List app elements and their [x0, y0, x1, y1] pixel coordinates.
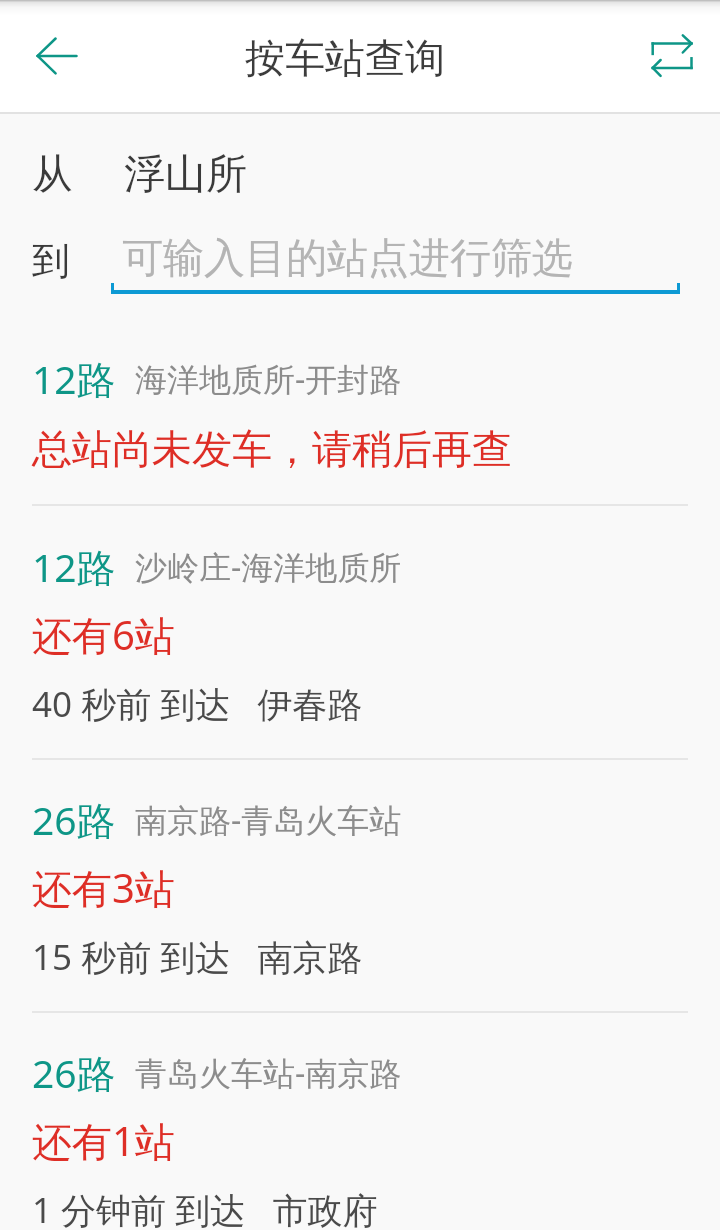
staticText: 26路: [32, 793, 116, 846]
staticText: 可输入目的站点进行筛选: [122, 233, 573, 285]
staticText: 还有1站: [32, 1113, 175, 1168]
staticText: 南京路-青岛火车站: [135, 798, 402, 842]
staticText: 还有6站: [32, 607, 175, 662]
staticText: 15 秒前 到达 南京路: [32, 933, 363, 981]
button[interactable]: 12路: [0, 320, 720, 504]
button[interactable]: 可输入目的站点进行筛选: [111, 224, 680, 294]
button[interactable]: 26路: [0, 760, 720, 1011]
staticText: 海洋地质所-开封路: [135, 357, 402, 401]
button[interactable]: 从: [0, 116, 720, 216]
staticText: 1 分钟前 到达 市政府: [32, 1186, 378, 1230]
staticText: 12路: [32, 352, 116, 405]
staticText: 到: [32, 237, 70, 285]
staticText: 从: [32, 149, 73, 201]
button[interactable]: 26路: [0, 1013, 720, 1230]
staticText: 总站尚未发车，请稍后再查: [32, 424, 512, 474]
button[interactable]: 12路: [0, 506, 720, 758]
staticText: 40 秒前 到达 伊春路: [32, 680, 363, 728]
staticText: 12路: [32, 540, 116, 593]
button[interactable]: Back: [14, 26, 86, 98]
staticText: 还有3站: [32, 860, 175, 915]
staticText: 青岛火车站-南京路: [135, 1051, 402, 1095]
staticText: 沙岭庄-海洋地质所: [135, 545, 402, 589]
button[interactable]: Swap stations: [636, 19, 708, 99]
staticText: 26路: [32, 1046, 116, 1099]
staticText: 浮山所: [124, 149, 247, 201]
staticText: 按车站查询: [245, 33, 445, 83]
